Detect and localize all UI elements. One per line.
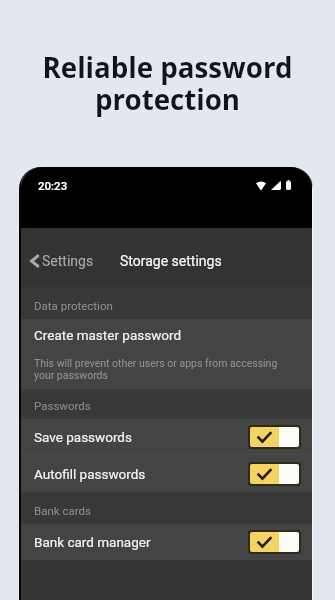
button[interactable]: Create master password — [21, 319, 312, 389]
staticText: This will prevent other users or apps fr… — [34, 357, 280, 382]
staticText: Data protection — [34, 299, 113, 312]
staticText: Bank card manager — [34, 534, 151, 550]
other: Back to Settings — [27, 252, 42, 270]
staticText: Bank cards — [34, 504, 91, 517]
staticText: Save passwords — [34, 429, 132, 445]
other: Toggle — [248, 425, 301, 449]
other: Toggle — [248, 530, 301, 554]
staticText: Reliable password protection — [0, 48, 335, 118]
other: Toggle — [248, 462, 301, 486]
button[interactable]: Bank card manager — [21, 524, 312, 560]
staticText: Passwords — [34, 399, 91, 412]
staticText: 20:23 — [38, 179, 68, 192]
button[interactable]: Autofill passwords — [21, 455, 312, 492]
staticText: Settings — [42, 253, 94, 269]
staticText: Autofill passwords — [34, 466, 146, 482]
staticText: Create master password — [34, 327, 182, 343]
button[interactable]: Save passwords — [21, 419, 312, 454]
staticText: Storage settings — [120, 253, 222, 269]
button[interactable]: Back to Settings — [27, 252, 94, 270]
